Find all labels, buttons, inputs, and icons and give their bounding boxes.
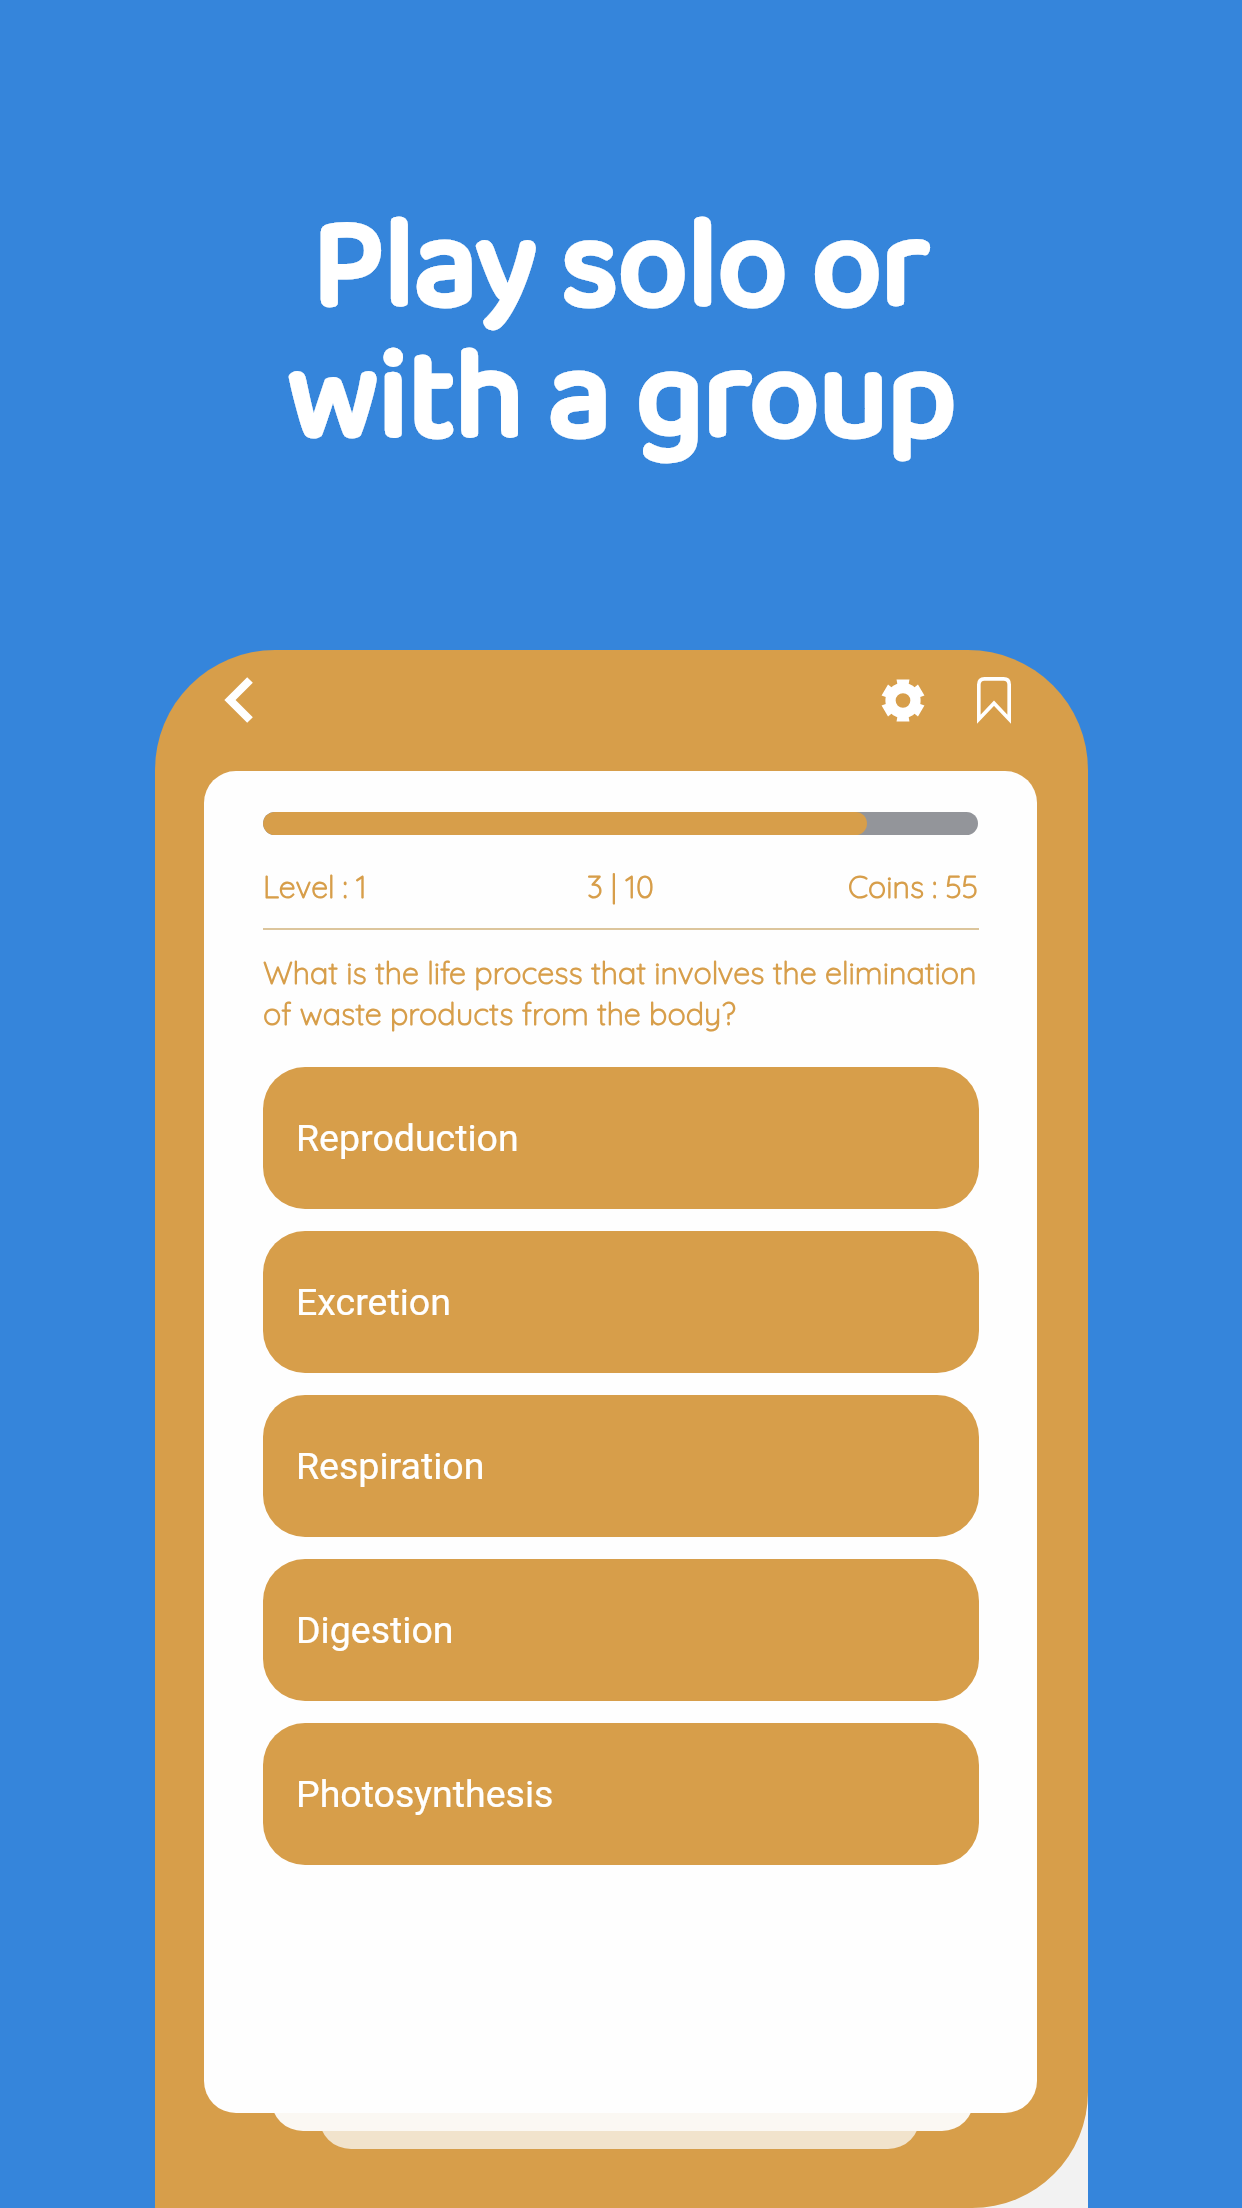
button[interactable]: Photosynthesis <box>263 1723 979 1865</box>
staticText: Coins : 55 <box>848 868 978 906</box>
button[interactable]: Reproduction <box>263 1067 979 1209</box>
button[interactable]: Settings <box>855 652 951 748</box>
button[interactable]: Back <box>192 652 288 748</box>
staticText: Level : 1 <box>263 868 367 906</box>
button[interactable]: Bookmark <box>946 651 1042 747</box>
staticText: Play solo or <box>313 168 929 368</box>
button[interactable]: Digestion <box>263 1559 979 1701</box>
staticText: Digestion <box>296 1608 454 1652</box>
staticText: with a group <box>287 299 956 499</box>
staticText: What is the life process that involves t… <box>263 953 989 1032</box>
staticText: Reproduction <box>296 1116 519 1160</box>
staticText: Excretion <box>296 1280 451 1324</box>
button[interactable]: Excretion <box>263 1231 979 1373</box>
staticText: with a group <box>287 299 956 499</box>
button[interactable]: Respiration <box>263 1395 979 1537</box>
staticText: Play solo or <box>313 168 929 368</box>
staticText: Photosynthesis <box>296 1772 554 1816</box>
staticText: 3 | 10 <box>587 868 654 906</box>
staticText: Respiration <box>296 1444 485 1488</box>
